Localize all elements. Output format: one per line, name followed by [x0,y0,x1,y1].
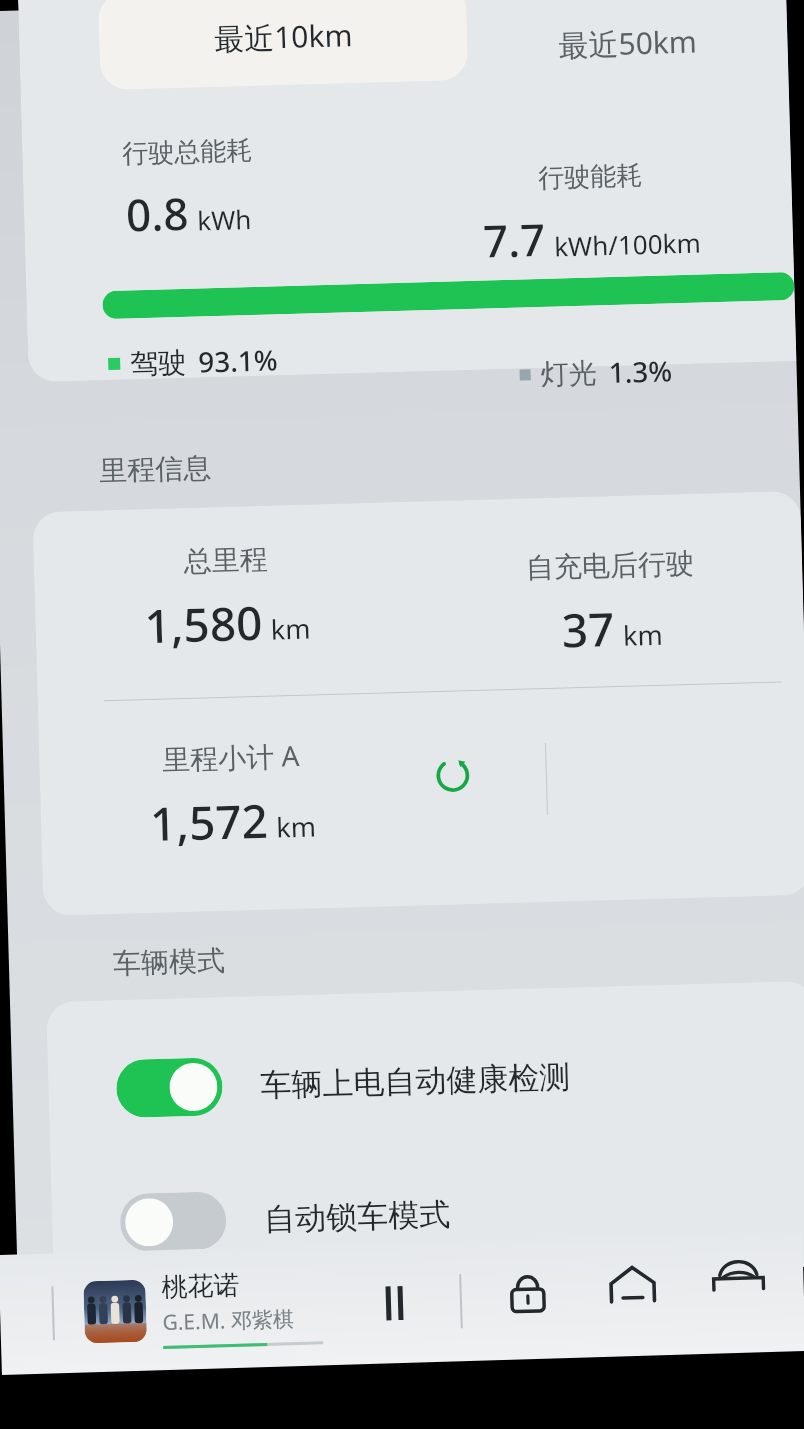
staticText: 93.1% [198,340,279,381]
staticText: 驾驶 [130,345,187,381]
button[interactable]: 桃花诺 [83,1255,324,1362]
staticText: 1,580 [144,591,263,657]
staticText: 灯光 [540,355,597,392]
staticText: km [276,807,317,846]
button[interactable]: Vehicle [697,1236,779,1318]
staticText: 1,572 [149,789,269,855]
staticText: 里程小计 A [162,736,301,778]
staticText: km [270,610,311,648]
staticText: 总里程 [183,542,268,579]
button[interactable] [119,1191,227,1252]
button[interactable]: Reset trip A [423,745,483,804]
staticText: 7.7 [482,209,547,270]
staticText: kWh [197,201,253,237]
staticText: 1.3% [608,351,673,391]
button[interactable]: 最近50km [466,0,789,96]
staticText: 37 [561,597,616,662]
staticText: 行驶总能耗 [122,134,253,171]
staticText: 桃花诺 [161,1269,240,1304]
staticText: 车辆模式 [112,943,225,981]
staticText: 最近10km [214,14,354,59]
staticText: 自充电后行驶 [526,546,694,585]
staticText: 自动锁车模式 [264,1195,451,1239]
button[interactable] [116,1057,223,1118]
staticText: 车辆上电自动健康检测 [260,1057,571,1105]
button[interactable]: 自动锁车模式 [51,1159,804,1270]
staticText: kWh/100km [554,224,701,264]
staticText: 里程信息 [99,450,212,488]
button[interactable]: 最近10km [98,0,468,90]
staticText: 0.8 [125,183,190,244]
staticText: km [622,616,663,654]
button[interactable]: 车辆上电自动健康检测 [47,1025,804,1136]
staticText: 最近50km [558,20,698,65]
button[interactable]: Home [591,1245,674,1327]
staticText: 行驶能耗 [538,159,643,195]
button[interactable]: Lock [487,1252,569,1334]
button[interactable]: Pause [355,1264,433,1342]
staticText: G.E.M. 邓紫棋 [162,1304,295,1337]
